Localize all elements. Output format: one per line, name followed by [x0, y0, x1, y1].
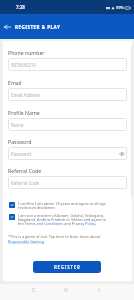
button[interactable]: REGISTER — [33, 261, 101, 273]
button[interactable]: Show password — [117, 149, 127, 159]
button[interactable]: Referral Code — [8, 176, 127, 189]
button[interactable]: Recent apps — [27, 284, 39, 296]
staticText: REGISTER — [54, 264, 81, 270]
staticText: Profile Name — [8, 109, 40, 116]
button[interactable]: Navigate back — [0, 14, 15, 39]
staticText: Phone number — [8, 49, 45, 56]
staticText: 7:28 — [16, 4, 25, 10]
button[interactable]: Name — [8, 118, 127, 131]
button[interactable]: 9876543210 — [8, 58, 127, 71]
button[interactable]: Responsible Gaming — [8, 239, 45, 244]
staticText: *This is a game of risk. Tap here to lea… — [8, 234, 101, 239]
staticText: Email — [8, 79, 22, 86]
button[interactable]: Password — [8, 147, 127, 160]
staticText: Referral Code — [11, 180, 40, 186]
staticText: I confirm I am above 18 years and agree … — [18, 201, 109, 210]
staticText: Password — [8, 138, 32, 145]
button[interactable]: Back — [93, 284, 105, 296]
staticText: 59% — [116, 5, 124, 10]
staticText: Referral Code — [8, 167, 42, 174]
staticText: REGISTER & PLAY — [15, 24, 61, 30]
button[interactable]: Email Address — [8, 88, 127, 101]
button[interactable]: Home — [60, 284, 72, 296]
staticText: Password — [11, 151, 31, 157]
staticText: I am not a resident of Assam, Odisha, Te… — [18, 213, 109, 226]
button[interactable]: I am not a resident of Assam, Odisha, Te… — [9, 213, 109, 226]
button[interactable]: I confirm I am above 18 years and agree … — [9, 201, 109, 210]
staticText: 9876543210 — [11, 62, 37, 68]
staticText: Name — [11, 122, 24, 128]
staticText: Email Address — [11, 92, 41, 98]
